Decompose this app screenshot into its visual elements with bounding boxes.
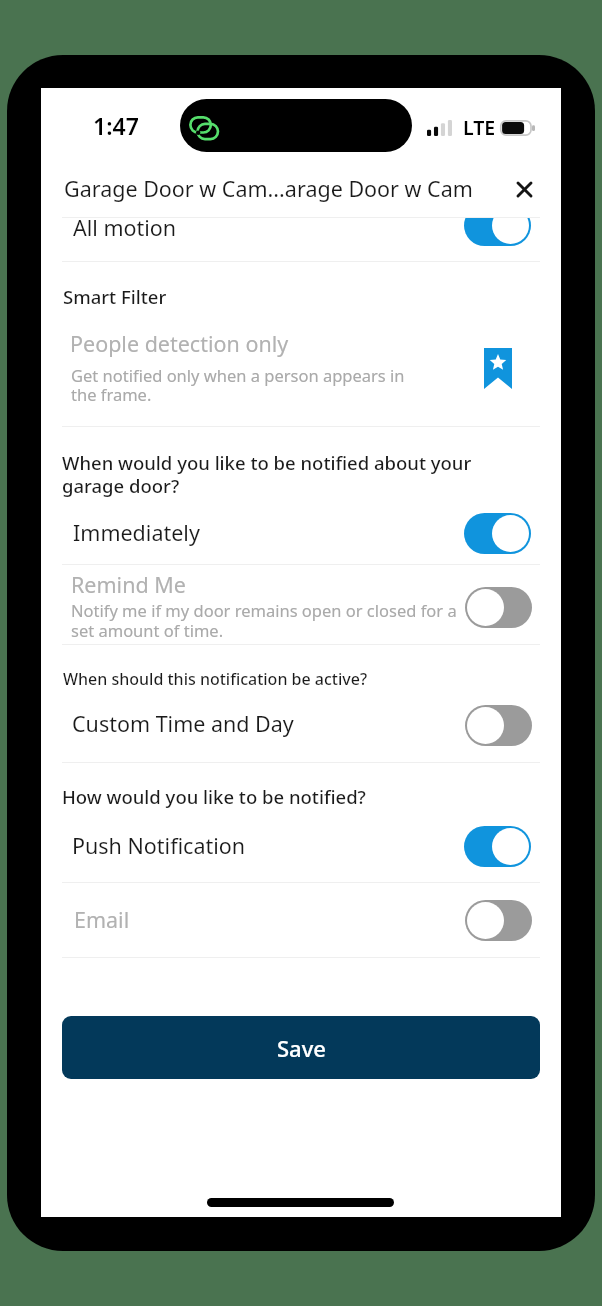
button[interactable] — [62, 566, 540, 643]
staticText: People detection only — [70, 329, 289, 358]
staticText: Email — [74, 905, 130, 934]
staticText: All motion — [73, 218, 177, 242]
staticText: Smart Filter — [63, 284, 167, 309]
staticText: When would you like to be notified about… — [62, 450, 477, 498]
button[interactable]: All motion on — [464, 218, 531, 246]
button[interactable] — [62, 692, 540, 761]
button[interactable] — [62, 505, 540, 563]
staticText: When should this notification be active? — [63, 668, 368, 690]
button[interactable]: Toggle off — [465, 705, 532, 746]
button[interactable]: Toggle off — [465, 900, 532, 941]
staticText: Remind Me — [71, 570, 186, 599]
staticText: Immediately — [73, 518, 200, 547]
button[interactable]: Close — [502, 167, 546, 211]
staticText: 1:47 — [93, 110, 139, 141]
button[interactable] — [62, 884, 540, 956]
staticText: Get notified only when a person appears … — [71, 364, 407, 405]
button[interactable] — [62, 218, 540, 261]
staticText: Save — [277, 1033, 326, 1063]
staticText: Notify me if my door remains open or clo… — [71, 599, 467, 642]
button[interactable]: Toggle on — [464, 513, 531, 554]
staticText: Garage Door w Cam...arage Door w Cam — [64, 174, 473, 203]
button[interactable] — [62, 815, 540, 881]
staticText: How would you like to be notified? — [62, 784, 366, 809]
staticText: Push Notification — [72, 831, 246, 860]
staticText: Custom Time and Day — [72, 709, 294, 738]
button[interactable]: Toggle off — [465, 587, 532, 628]
staticText: LTE — [463, 114, 496, 141]
button[interactable]: Save — [62, 1016, 540, 1079]
button[interactable]: Toggle on — [464, 826, 531, 867]
button[interactable] — [62, 320, 540, 415]
